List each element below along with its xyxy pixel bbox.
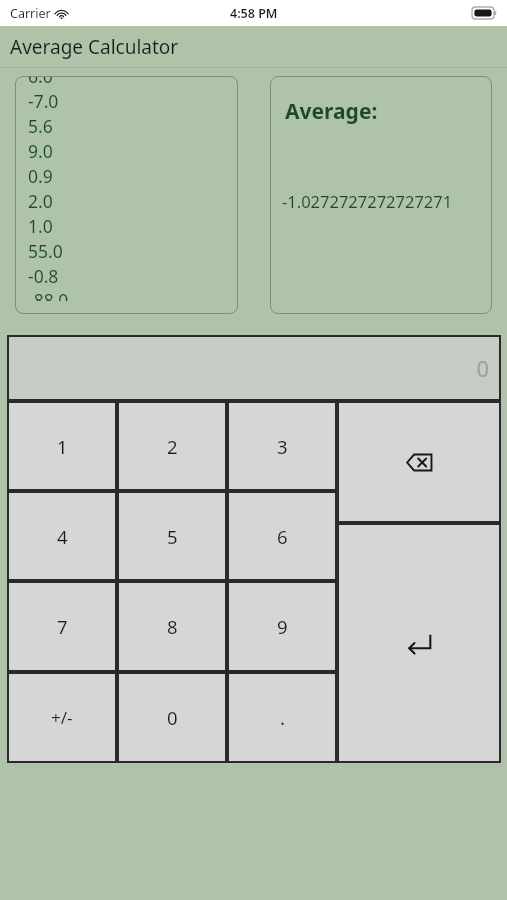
button[interactable]: 9 xyxy=(227,581,337,672)
staticText: 1 xyxy=(57,434,68,459)
staticText: 2.0 xyxy=(28,189,53,213)
staticText: -1.0272727272727271 xyxy=(282,190,453,212)
button[interactable]: Backspace xyxy=(337,401,501,523)
staticText: 0 xyxy=(476,353,489,383)
button[interactable]: Average: xyxy=(270,76,492,314)
staticText: 6 xyxy=(277,524,288,549)
button[interactable]: +/- xyxy=(7,672,117,763)
staticText: +/- xyxy=(51,706,73,729)
button[interactable]: Enter xyxy=(337,523,501,763)
staticText: -7.0 xyxy=(28,89,59,113)
staticText: 8 xyxy=(167,614,178,639)
staticText: 2 xyxy=(167,434,178,459)
staticText: 3 xyxy=(277,434,288,459)
staticText: 4:58 PM xyxy=(230,5,278,22)
staticText: 6.0 xyxy=(28,76,53,88)
staticText: 5 xyxy=(167,524,178,549)
staticText: 7 xyxy=(57,614,68,639)
staticText: 9.0 xyxy=(28,139,53,163)
button[interactable]: 0 xyxy=(7,335,501,401)
button[interactable]: 4 xyxy=(7,491,117,581)
button[interactable]: 2 xyxy=(117,401,227,491)
button[interactable]: 6.0 xyxy=(15,76,238,314)
staticText: 9 xyxy=(277,614,288,639)
staticText: -0.8 xyxy=(28,264,59,288)
staticText: -88.0 xyxy=(28,288,69,301)
staticText: . xyxy=(280,705,285,730)
staticText: 5.6 xyxy=(28,114,53,138)
button[interactable]: 8 xyxy=(117,581,227,672)
button[interactable]: 1 xyxy=(7,401,117,491)
staticText: Average Calculator xyxy=(10,34,179,60)
button[interactable]: 5 xyxy=(117,491,227,581)
staticText: Carrier xyxy=(10,5,51,22)
staticText: 0.9 xyxy=(28,164,53,188)
staticText: 0 xyxy=(167,705,178,730)
button[interactable]: 0 xyxy=(117,672,227,763)
staticText: 4 xyxy=(57,524,68,549)
button[interactable]: . xyxy=(227,672,337,763)
staticText: 55.0 xyxy=(28,239,63,263)
staticText: Average: xyxy=(285,97,378,126)
button[interactable]: 7 xyxy=(7,581,117,672)
staticText: 1.0 xyxy=(28,214,53,238)
button[interactable]: 3 xyxy=(227,401,337,491)
button[interactable]: 6 xyxy=(227,491,337,581)
